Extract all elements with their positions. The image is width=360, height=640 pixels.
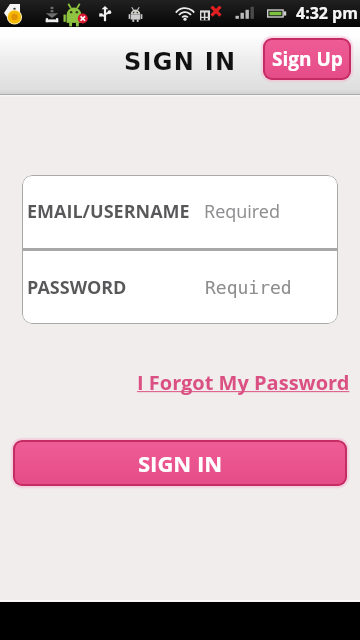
staticText: SIGN IN <box>138 448 223 478</box>
button[interactable]: EMAIL/USERNAME <box>22 175 338 248</box>
staticText: I Forgot My Password <box>137 369 350 396</box>
button[interactable]: PASSWORD <box>22 251 338 324</box>
staticText: PASSWORD <box>27 275 127 300</box>
button[interactable]: SIGN IN <box>13 440 347 486</box>
button[interactable]: I Forgot My Password <box>137 369 350 396</box>
staticText: SIGN IN <box>124 48 237 76</box>
staticText: Required <box>205 277 292 298</box>
staticText: Sign Up <box>272 46 343 72</box>
staticText: 4:32 pm <box>296 2 358 24</box>
staticText: Required <box>204 199 280 224</box>
button[interactable]: Sign Up <box>263 38 351 80</box>
staticText: EMAIL/USERNAME <box>27 199 190 224</box>
